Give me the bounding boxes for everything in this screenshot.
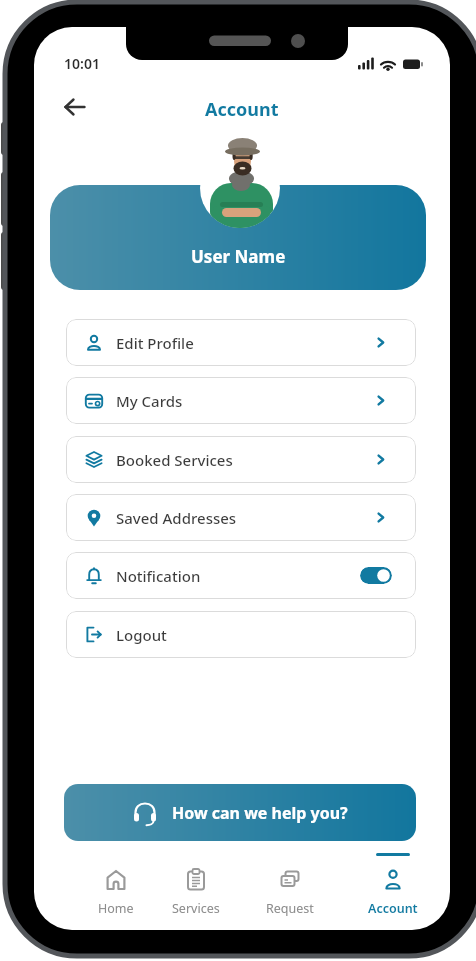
button[interactable] [57, 89, 93, 125]
staticText: Saved Addresses [116, 508, 237, 528]
staticText: Edit Profile [116, 333, 194, 353]
button[interactable]: Request [256, 867, 324, 917]
button[interactable]: My Cards [66, 377, 416, 424]
staticText: Home [98, 900, 134, 917]
button[interactable] [360, 567, 392, 584]
button[interactable]: Home [82, 867, 150, 917]
staticText: Account [205, 97, 279, 120]
button[interactable]: Notification [66, 552, 416, 599]
staticText: Booked Services [116, 450, 233, 470]
button[interactable]: Logout [66, 611, 416, 658]
staticText: How can we help you? [172, 802, 348, 824]
button[interactable]: Services [162, 867, 230, 917]
staticText: Request [266, 900, 314, 917]
button[interactable]: Booked Services [66, 436, 416, 483]
button[interactable]: Edit Profile [66, 319, 416, 366]
staticText: My Cards [116, 391, 183, 411]
staticText: Notification [116, 566, 201, 586]
staticText: User Name [191, 245, 286, 268]
staticText: Account [368, 900, 418, 917]
button[interactable]: Account [359, 867, 427, 917]
staticText: Logout [116, 625, 167, 645]
button[interactable]: How can we help you? [64, 784, 416, 841]
button[interactable]: Saved Addresses [66, 494, 416, 541]
staticText: Services [172, 900, 220, 917]
staticText: 10:01 [64, 54, 100, 73]
